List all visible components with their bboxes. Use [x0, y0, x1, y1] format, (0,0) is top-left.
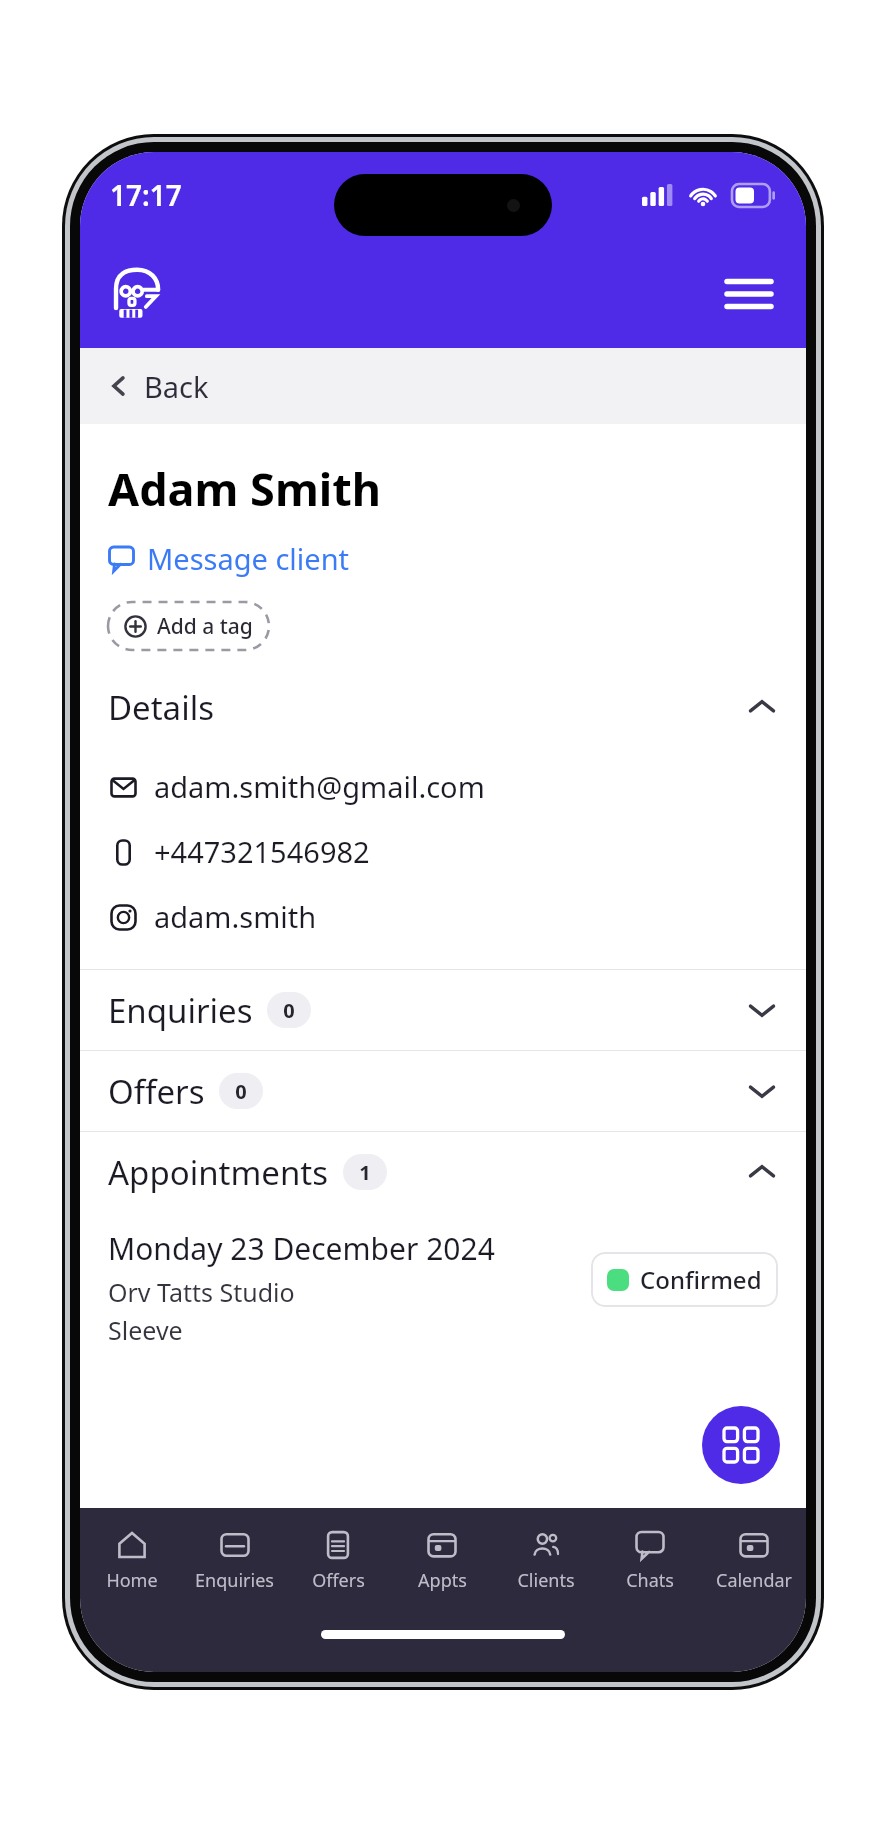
staticText: Back [144, 367, 209, 406]
staticText: adam.smith@gmail.com [154, 767, 485, 806]
button[interactable]: Quick actions [702, 1406, 780, 1484]
staticText: Chats [626, 1568, 674, 1593]
button[interactable]: Back [80, 348, 806, 424]
staticText: Enquiries [108, 988, 253, 1033]
button[interactable]: Menu [718, 263, 780, 325]
staticText: 0 [235, 1078, 247, 1105]
button[interactable]: +447321546982 [80, 825, 806, 878]
staticText: 1 [359, 1159, 371, 1186]
staticText: Offers [108, 1069, 205, 1114]
staticText: Message client [147, 539, 350, 578]
staticText: Home [106, 1568, 158, 1593]
staticText: +447321546982 [154, 832, 370, 871]
button[interactable]: Message client [108, 535, 350, 582]
button[interactable]: adam.smith@gmail.com [80, 760, 806, 813]
button[interactable]: Home [80, 1508, 183, 1612]
staticText: Orv Tatts Studio [108, 1275, 295, 1309]
staticText: Appts [418, 1568, 467, 1593]
button[interactable]: App home [106, 264, 166, 324]
staticText: Calendar [716, 1568, 792, 1593]
staticText: Offers [312, 1568, 365, 1593]
button[interactable]: Add a tag [108, 602, 269, 650]
button[interactable]: Confirmed [591, 1252, 778, 1307]
button[interactable]: Monday 23 December 2024 [80, 1222, 806, 1353]
button[interactable]: Appts [390, 1508, 494, 1612]
button[interactable]: Calendar [702, 1508, 806, 1612]
button[interactable]: Chats [598, 1508, 702, 1612]
staticText: Sleeve [108, 1313, 183, 1347]
staticText: Adam Smith [108, 458, 382, 519]
button[interactable]: Offers [286, 1508, 390, 1612]
staticText: Details [108, 685, 214, 730]
staticText: Clients [517, 1568, 575, 1593]
button[interactable]: Appointments [80, 1132, 806, 1212]
button[interactable]: Details [80, 674, 806, 740]
staticText: 0 [283, 997, 295, 1024]
button[interactable]: Clients [494, 1508, 598, 1612]
staticText: Add a tag [157, 612, 253, 641]
button[interactable]: Offers [80, 1051, 806, 1131]
staticText: adam.smith [154, 897, 317, 936]
staticText: Enquiries [195, 1568, 274, 1593]
button[interactable]: Enquiries [80, 970, 806, 1050]
button[interactable]: adam.smith [80, 890, 806, 943]
staticText: Appointments [108, 1150, 329, 1195]
staticText: 17:17 [110, 176, 182, 214]
staticText: Confirmed [640, 1263, 762, 1296]
staticText: Monday 23 December 2024 [108, 1228, 495, 1269]
button[interactable]: Enquiries [183, 1508, 286, 1612]
